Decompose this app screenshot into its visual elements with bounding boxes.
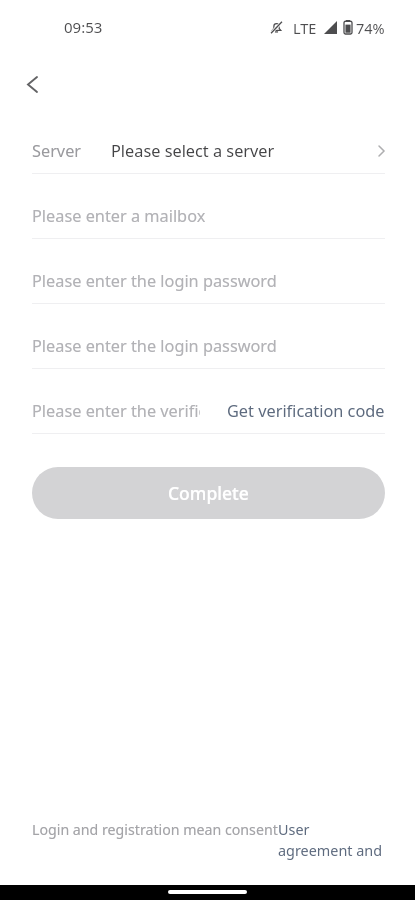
staticText: Please enter the verification code: [32, 400, 200, 422]
button[interactable]: Complete: [32, 467, 385, 519]
button[interactable]: Get verification code: [211, 392, 385, 433]
button[interactable]: Please enter the login password: [32, 304, 385, 368]
button[interactable]: Please enter a mailbox: [32, 174, 385, 238]
staticText: 74%: [356, 18, 385, 38]
staticText: Please enter the login password: [32, 335, 277, 357]
staticText: Complete: [168, 481, 249, 505]
staticText: LTE: [293, 18, 317, 38]
staticText: Login and registration mean consent: [32, 820, 278, 839]
staticText: Please enter the login password: [32, 270, 277, 292]
button[interactable]: Back: [8, 60, 56, 108]
button[interactable]: User agreement and: [278, 820, 384, 861]
staticText: Please select a server: [111, 140, 275, 162]
button[interactable]: Please enter the login password: [32, 239, 385, 303]
staticText: Server: [32, 140, 82, 162]
staticText: Please enter a mailbox: [32, 205, 206, 227]
staticText: 09:53: [64, 17, 103, 37]
staticText: User agreement and: [278, 820, 384, 861]
button[interactable]: Server: [32, 109, 385, 173]
staticText: Get verification code: [227, 400, 385, 422]
button[interactable]: Please enter the verification code: [32, 369, 200, 433]
